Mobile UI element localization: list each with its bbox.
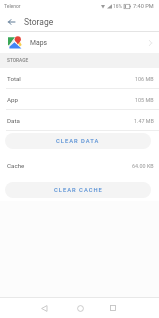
staticText: 7:40 PM [133, 3, 154, 10]
staticText: 16% [113, 4, 122, 10]
button[interactable]: Total [0, 68, 159, 89]
staticText: CLEAR CACHE [54, 187, 103, 194]
button[interactable]: Data [0, 110, 159, 131]
staticText: Cache [7, 162, 25, 169]
staticText: STORAGE [7, 58, 29, 64]
staticText: 106 MB [135, 76, 154, 82]
button[interactable]: App [0, 89, 159, 110]
staticText: Total [7, 75, 21, 82]
staticText: App [7, 96, 18, 103]
staticText: CLEAR DATA [56, 138, 100, 145]
staticText: 105 MB [135, 97, 154, 103]
button[interactable]: CLEAR CACHE [5, 182, 151, 198]
staticText: Maps [30, 39, 47, 47]
button[interactable]: Recent apps [103, 298, 123, 318]
button[interactable]: Home [70, 298, 90, 318]
button[interactable]: Cache [0, 155, 159, 176]
button[interactable]: Back [2, 13, 20, 31]
staticText: Data [7, 117, 20, 124]
staticText: 64.00 KB [132, 163, 154, 169]
staticText: Storage [24, 17, 54, 27]
button[interactable]: CLEAR DATA [5, 133, 151, 149]
staticText: 1.47 MB [134, 118, 154, 124]
staticText: Telenor [4, 3, 21, 9]
button[interactable]: Back [34, 298, 54, 318]
button[interactable]: Maps [0, 32, 159, 53]
